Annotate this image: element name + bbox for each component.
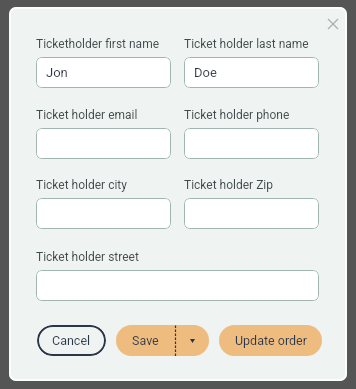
- staticText: Jon: [46, 65, 68, 80]
- button[interactable]: Ticketholder first name: [36, 57, 171, 88]
- staticText: Ticket holder street: [36, 250, 139, 264]
- button[interactable]: Update order: [219, 325, 322, 356]
- staticText: Update order: [235, 333, 307, 348]
- button[interactable]: Ticket holder email: [36, 128, 171, 159]
- staticText: Doe: [194, 65, 217, 80]
- button[interactable]: Ticket holder street: [36, 270, 319, 301]
- staticText: Save: [132, 333, 159, 348]
- staticText: Ticket holder Zip: [184, 178, 273, 192]
- button[interactable]: More save options: [176, 325, 209, 356]
- button[interactable]: Ticket holder phone: [184, 128, 319, 159]
- button[interactable]: Ticket holder last name: [184, 57, 319, 88]
- button[interactable]: Save: [116, 325, 175, 356]
- staticText: Ticketholder first name: [36, 37, 160, 51]
- staticText: Ticket holder last name: [184, 37, 309, 51]
- staticText: Ticket holder city: [36, 178, 127, 192]
- staticText: Cancel: [52, 333, 91, 348]
- button[interactable]: Ticket holder Zip: [184, 198, 319, 229]
- button[interactable]: Cancel: [37, 325, 106, 356]
- button[interactable]: Ticket holder city: [36, 198, 171, 229]
- staticText: Ticket holder phone: [184, 108, 290, 122]
- staticText: Ticket holder email: [36, 108, 138, 122]
- button[interactable]: Close: [322, 13, 344, 35]
